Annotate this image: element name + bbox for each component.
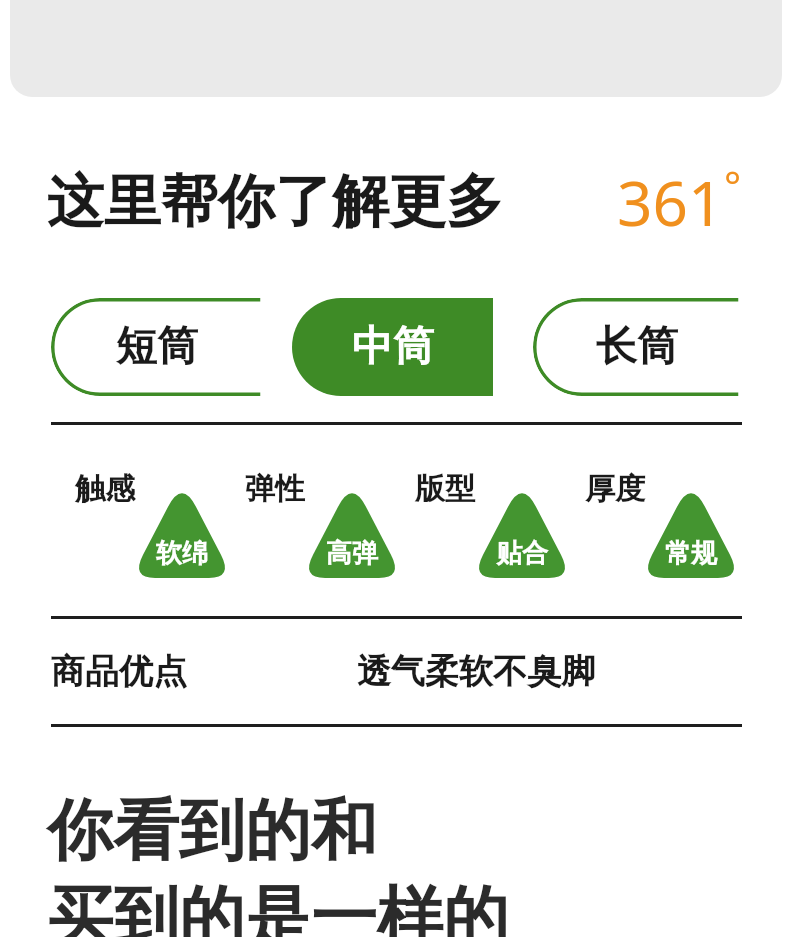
staticText: 商品优点 bbox=[51, 650, 187, 693]
staticText: 触感 bbox=[75, 470, 135, 508]
button[interactable]: 中筒 bbox=[292, 298, 493, 396]
staticText: 版型 bbox=[415, 470, 475, 508]
button[interactable]: 短筒 bbox=[51, 298, 262, 396]
staticText: 厚度 bbox=[585, 470, 645, 508]
staticText: ° bbox=[724, 158, 742, 212]
staticText: 361 bbox=[617, 160, 724, 244]
button[interactable]: 商品优点 bbox=[51, 619, 742, 724]
staticText: 常规 bbox=[665, 537, 717, 570]
staticText: 买到的是一样的 bbox=[47, 876, 509, 937]
staticText: 中筒 bbox=[352, 321, 434, 373]
staticText: 高弹 bbox=[326, 537, 378, 570]
staticText: 贴合 bbox=[496, 537, 548, 570]
staticText: 弹性 bbox=[245, 470, 305, 508]
staticText: 软绵 bbox=[156, 537, 208, 570]
staticText: 你看到的和 bbox=[47, 789, 377, 872]
staticText: 透气柔软不臭脚 bbox=[357, 650, 595, 693]
button[interactable]: 长筒 bbox=[533, 298, 740, 396]
staticText: 长筒 bbox=[596, 321, 678, 373]
staticText: 短筒 bbox=[116, 321, 198, 373]
staticText: 这里帮你了解更多 bbox=[47, 166, 503, 238]
